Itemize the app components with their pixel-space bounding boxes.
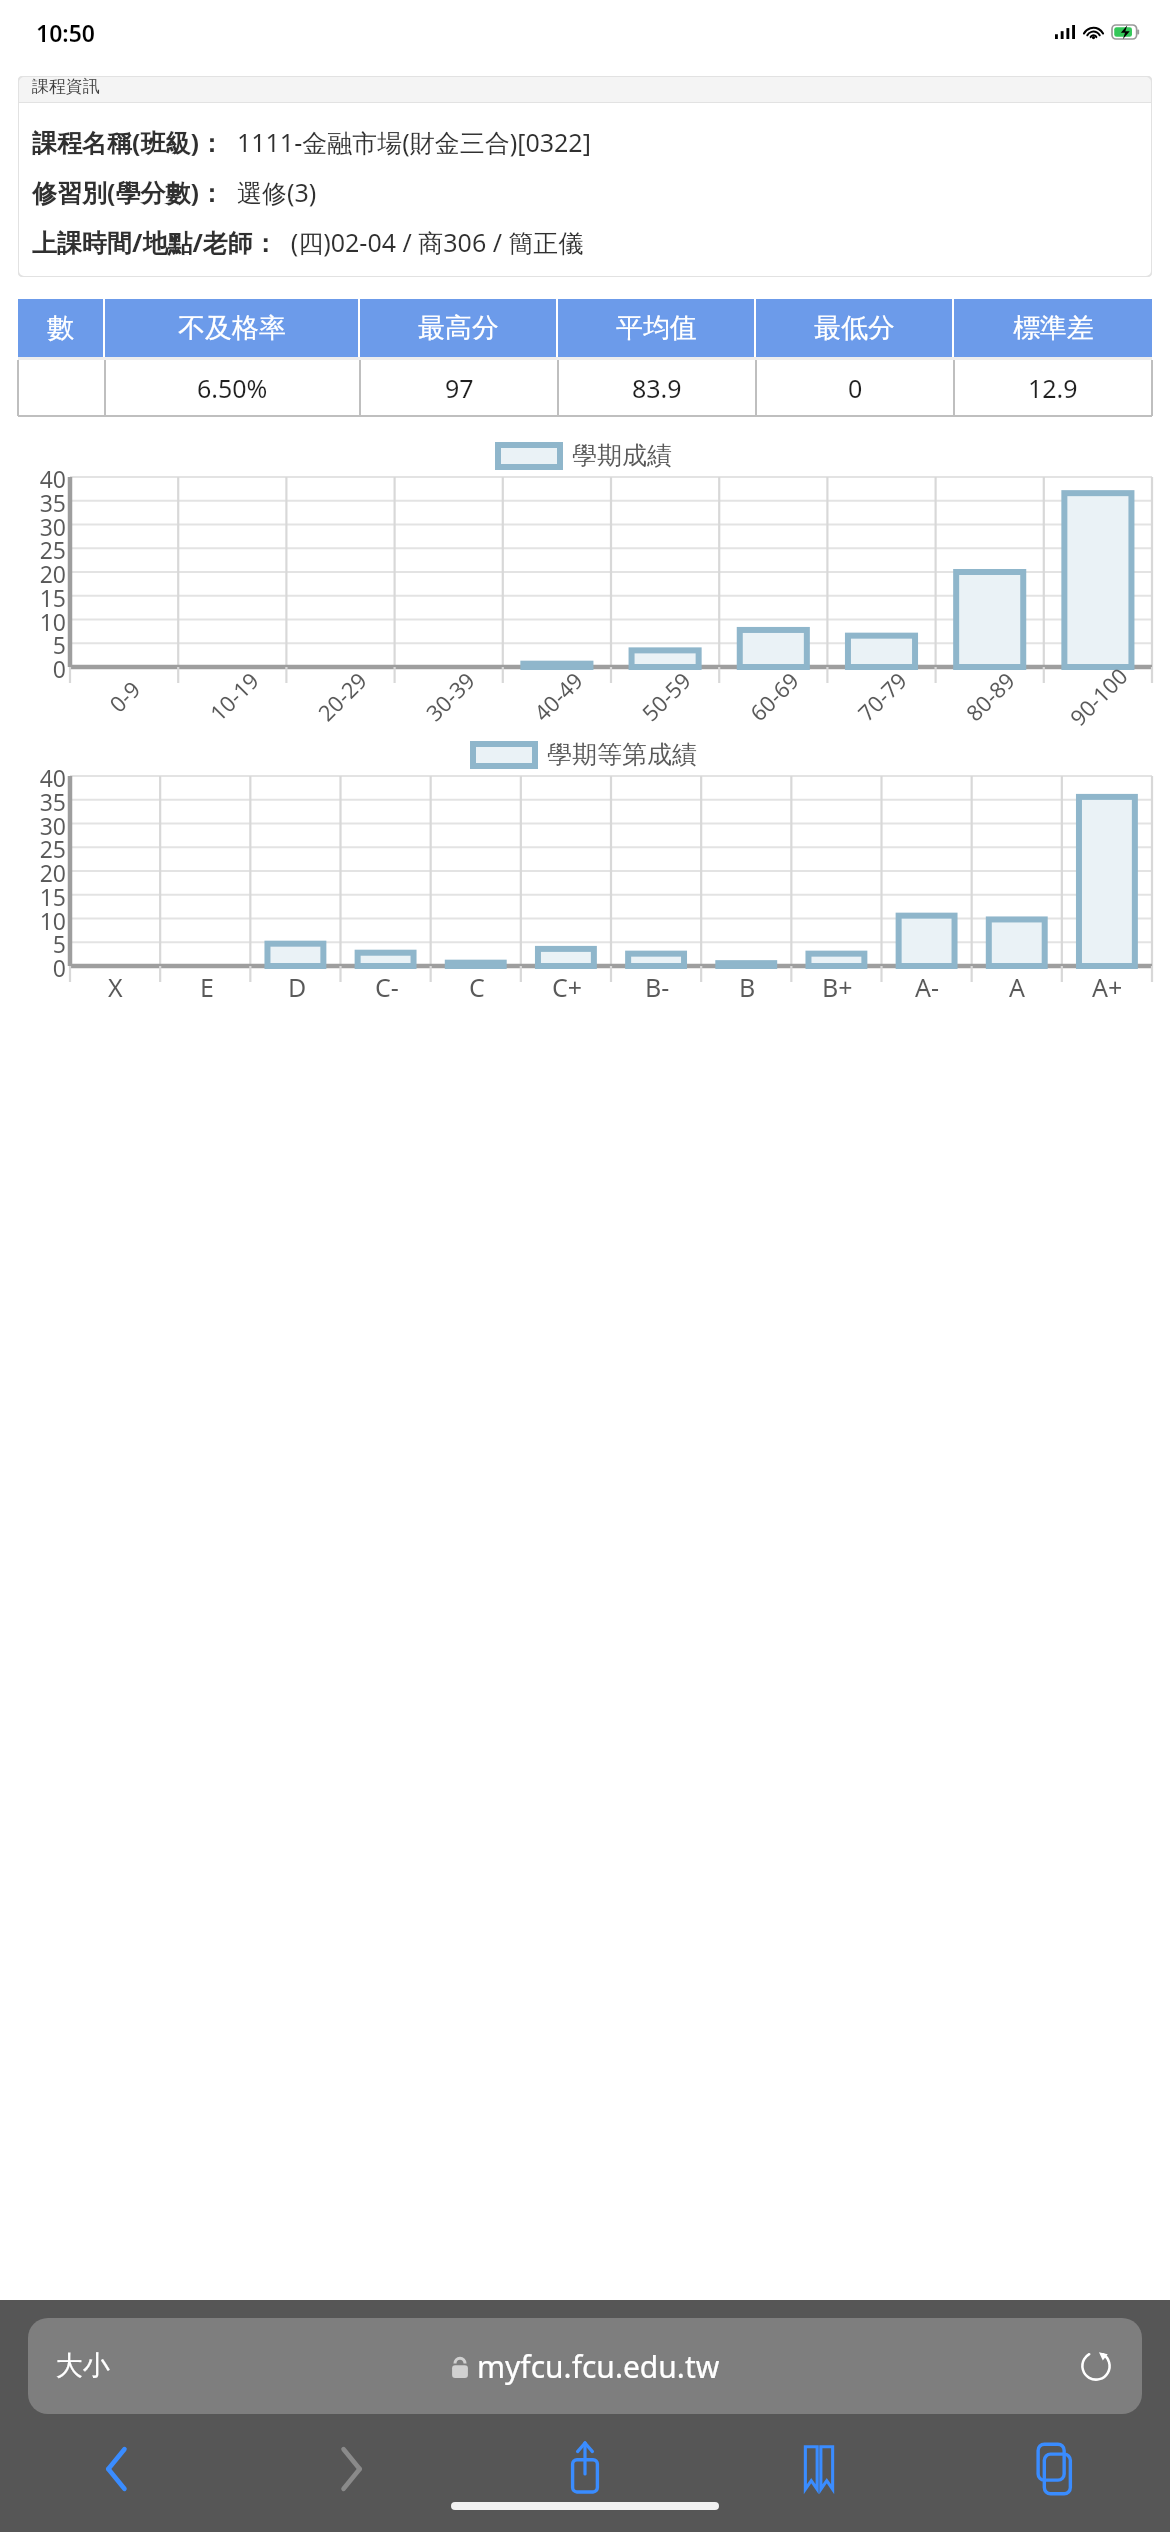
staticText: 5: [52, 928, 66, 956]
button[interactable]: Forward: [234, 2436, 468, 2502]
staticText: 最高分: [418, 311, 499, 345]
staticText: 數: [47, 311, 74, 345]
button[interactable]: Bookmarks: [702, 2436, 936, 2502]
staticText: 5: [52, 629, 66, 657]
staticText: 25: [39, 534, 66, 562]
staticText: 最低分: [814, 311, 895, 345]
staticText: B+: [822, 970, 853, 1000]
staticText: 學期等第成績: [547, 739, 697, 770]
staticText: 40: [39, 463, 66, 491]
staticText: 大小: [56, 2349, 110, 2383]
staticText: 6.50%: [197, 371, 268, 405]
staticText: X: [108, 970, 123, 1000]
staticText: 80-89: [959, 665, 1021, 727]
staticText: 20-29: [311, 665, 373, 727]
staticText: E: [200, 970, 214, 1000]
staticText: 83.9: [632, 371, 682, 405]
staticText: 70-79: [851, 665, 913, 727]
staticText: 修習別(學分數)： 選修(3): [32, 175, 317, 209]
staticText: 35: [39, 487, 66, 515]
staticText: 30: [39, 511, 66, 539]
button[interactable]: Reload: [1076, 2346, 1116, 2386]
staticText: A: [1009, 970, 1025, 1000]
staticText: 15: [39, 881, 66, 909]
staticText: D: [288, 970, 307, 1000]
staticText: 40: [39, 762, 66, 790]
staticText: 20: [39, 558, 66, 586]
staticText: C-: [375, 970, 399, 1000]
staticText: 0: [52, 653, 66, 681]
staticText: 15: [39, 582, 66, 610]
staticText: C+: [552, 970, 583, 1000]
staticText: 12.9: [1028, 371, 1078, 405]
button[interactable]: 大小: [28, 2318, 1142, 2414]
staticText: 0-9: [102, 674, 147, 718]
staticText: 10: [39, 606, 66, 634]
staticText: 40-49: [527, 665, 589, 727]
button[interactable]: Tabs: [936, 2436, 1170, 2502]
staticText: B: [739, 970, 756, 1000]
staticText: 10: [39, 905, 66, 933]
button[interactable]: 數: [18, 299, 1152, 416]
staticText: 課程資訊: [32, 76, 100, 97]
staticText: A-: [915, 970, 940, 1000]
staticText: 0: [52, 952, 66, 980]
staticText: 30: [39, 810, 66, 838]
staticText: myfcu.fcu.edu.tw: [477, 2346, 720, 2387]
staticText: 10-19: [203, 665, 265, 727]
staticText: A+: [1092, 970, 1123, 1000]
staticText: 標準差: [1013, 311, 1094, 345]
staticText: 學期成績: [572, 440, 672, 471]
staticText: 20: [39, 857, 66, 885]
staticText: 30-39: [419, 665, 481, 727]
staticText: 97: [445, 371, 474, 405]
staticText: 60-69: [743, 665, 805, 727]
staticText: 不及格率: [178, 311, 286, 345]
staticText: 0: [848, 371, 863, 405]
staticText: 35: [39, 786, 66, 814]
staticText: B-: [645, 970, 670, 1000]
staticText: 10:50: [36, 17, 95, 48]
button[interactable]: 課程資訊: [18, 76, 1152, 277]
staticText: C: [469, 970, 485, 1000]
button[interactable]: Share: [468, 2436, 702, 2502]
staticText: 90-100: [1063, 660, 1134, 732]
staticText: 課程名稱(班級)： 1111-金融市場(財金三合)[0322]: [32, 125, 591, 159]
button[interactable]: Back: [0, 2436, 234, 2502]
staticText: 平均值: [616, 311, 697, 345]
staticText: 50-59: [635, 665, 697, 727]
staticText: 25: [39, 833, 66, 861]
staticText: 上課時間/地點/老師： (四)02-04 / 商306 / 簡正儀: [32, 225, 584, 259]
